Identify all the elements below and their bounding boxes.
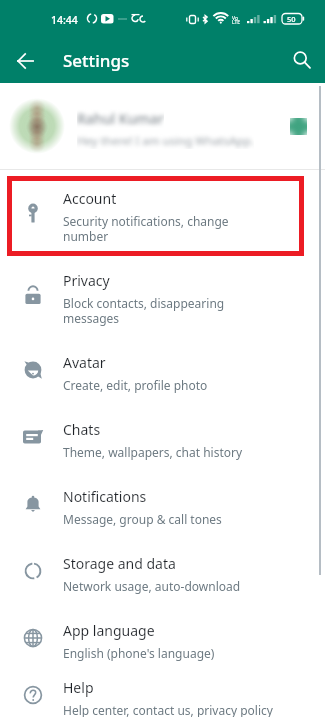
button[interactable]: Privacy [0,254,325,336]
staticText: Settings [63,49,130,72]
staticText: Block contacts, disappearing messages [63,295,225,326]
staticText: Hey there! I am using WhatsApp. [77,133,254,149]
staticText: Privacy [63,271,110,290]
button[interactable]: Account [0,172,325,254]
staticText: Storage and data [63,554,176,573]
staticText: 50 [287,14,296,24]
button[interactable]: Help [0,661,325,717]
button[interactable]: App language [0,604,325,671]
button[interactable]: Storage and data [0,537,325,604]
staticText: Security notifications, change number [63,213,229,244]
staticText: Help [63,678,94,697]
button[interactable]: QR code [290,118,307,135]
button[interactable]: Rahul Kumar [0,83,325,169]
staticText: Network usage, auto-download [63,578,241,594]
staticText: Notifications [63,487,147,506]
staticText: Vo LTE [232,15,241,26]
staticText: Account [63,189,117,208]
staticText: Avatar [63,353,106,372]
staticText: Chats [63,420,101,439]
button[interactable]: Search [290,49,314,73]
staticText: English (phone's language) [63,645,215,661]
staticText: Message, group & call tones [63,511,222,527]
staticText: Create, edit, profile photo [63,377,208,393]
staticText: Rahul Kumar [77,109,164,128]
button[interactable]: Back [13,49,37,73]
button[interactable]: Chats [0,403,325,470]
staticText: App language [63,621,155,640]
button[interactable]: Notifications [0,470,325,537]
staticText: Help center, contact us, privacy policy [63,702,273,717]
staticText: Theme, wallpapers, chat history [63,444,243,460]
button[interactable]: Avatar [0,336,325,403]
staticText: 14:44 [51,13,78,27]
